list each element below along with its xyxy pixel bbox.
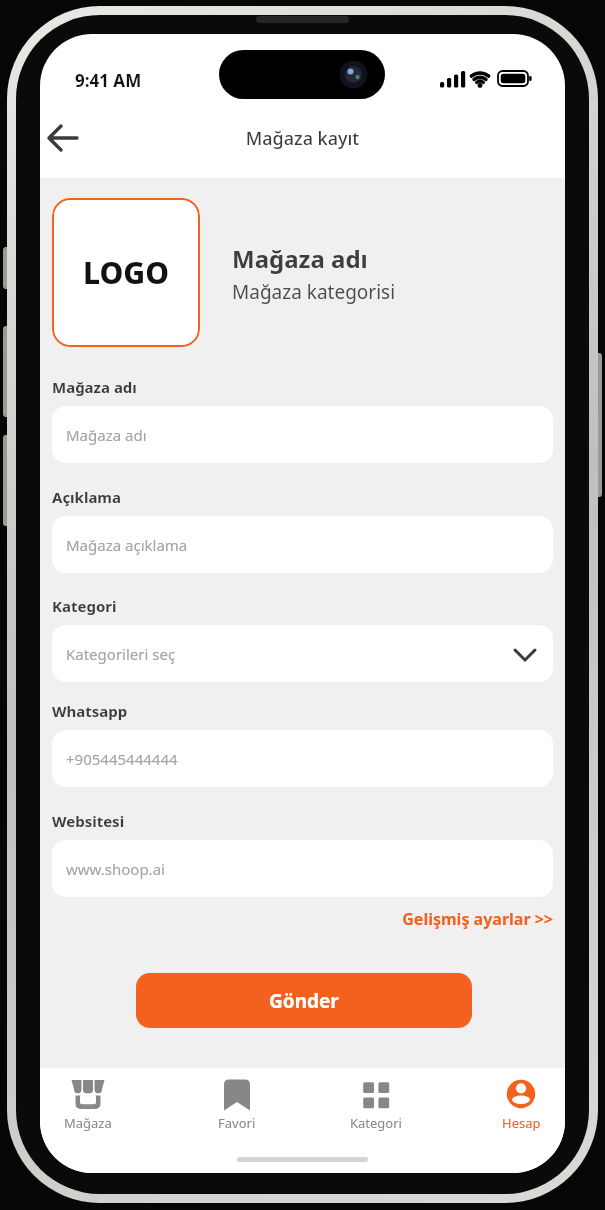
button[interactable]: +905445444444 xyxy=(52,730,553,787)
button[interactable]: Mağaza açıklama xyxy=(52,516,553,573)
staticText: Gelişmiş ayarlar >> xyxy=(353,908,553,930)
staticText: www.shoop.ai xyxy=(66,859,165,879)
staticText: Mağaza adı xyxy=(232,242,368,275)
button[interactable]: www.shoop.ai xyxy=(52,840,553,897)
staticText: Açıklama xyxy=(52,487,121,507)
button[interactable]: Gönder xyxy=(136,973,472,1028)
button[interactable] xyxy=(44,120,84,160)
staticText: Whatsapp xyxy=(52,701,128,721)
staticText: +905445444444 xyxy=(66,749,178,769)
button[interactable]: Favori xyxy=(192,1078,282,1132)
staticText: Mağaza açıklama xyxy=(66,535,188,555)
staticText: Favori xyxy=(218,1114,256,1132)
staticText: Kategori xyxy=(52,596,117,616)
staticText: 9:41 AM xyxy=(75,69,142,92)
button[interactable]: Gelişmiş ayarlar >> xyxy=(353,906,553,934)
staticText: Mağaza adı xyxy=(52,377,137,397)
button[interactable]: Mağaza adı xyxy=(52,406,553,463)
button[interactable]: Kategori xyxy=(331,1078,421,1132)
staticText: Kategorileri seç xyxy=(66,644,176,664)
staticText: Hesap xyxy=(502,1114,541,1132)
button[interactable]: Kategorileri seç xyxy=(52,625,553,682)
staticText: Mağaza kayıt xyxy=(40,126,565,151)
staticText: Mağaza kategorisi xyxy=(232,279,396,305)
button[interactable]: Mağaza xyxy=(43,1078,133,1132)
staticText: Kategori xyxy=(350,1114,402,1132)
staticText: Mağaza xyxy=(64,1114,112,1132)
staticText: LOGO xyxy=(83,252,170,293)
staticText: Websitesi xyxy=(52,811,125,831)
staticText: Mağaza adı xyxy=(66,425,147,445)
staticText: Gönder xyxy=(269,988,339,1014)
button[interactable]: Hesap xyxy=(476,1078,565,1132)
